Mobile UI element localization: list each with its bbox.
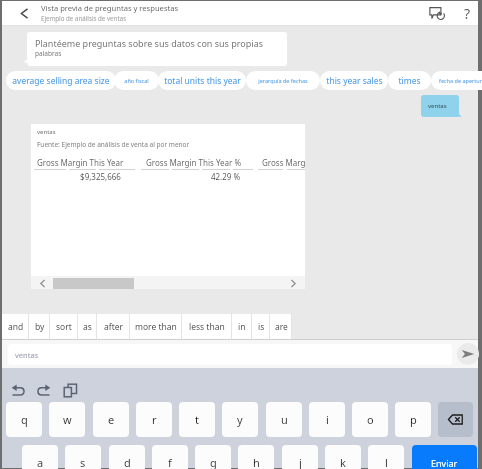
button[interactable]: s: [65, 445, 101, 469]
button[interactable]: g: [195, 445, 231, 469]
button[interactable]: i: [309, 402, 345, 437]
staticText: Gross Margin This Year %: [146, 157, 242, 168]
button[interactable]: Redo: [32, 379, 54, 401]
staticText: Gross Margin This Year: [37, 157, 124, 168]
button[interactable]: w: [49, 402, 85, 437]
staticText: d: [124, 455, 131, 469]
staticText: w: [63, 412, 72, 427]
button[interactable]: Reset conversation: [425, 1, 450, 26]
staticText: are: [275, 321, 288, 333]
staticText: o: [367, 412, 374, 427]
button[interactable]: o: [352, 402, 388, 437]
staticText: sort: [56, 321, 72, 333]
button[interactable]: Undo: [7, 379, 29, 401]
button[interactable]: k: [325, 445, 361, 469]
staticText: i: [326, 412, 329, 427]
staticText: less than: [189, 321, 225, 333]
button[interactable]: ventas: [8, 344, 452, 365]
staticText: a: [37, 455, 44, 469]
button[interactable]: total units this year: [158, 71, 246, 90]
button[interactable]: q: [6, 402, 42, 437]
button[interactable]: Copy: [59, 379, 81, 401]
button[interactable]: times: [388, 71, 431, 90]
button[interactable]: Send: [457, 343, 479, 365]
staticText: Plantéeme preguntas sobre sus datos con …: [35, 37, 263, 49]
staticText: p: [410, 412, 417, 427]
staticText: e: [108, 412, 115, 427]
button[interactable]: jerarquía de fechas: [246, 71, 320, 90]
staticText: s: [80, 455, 86, 469]
button[interactable]: after: [97, 314, 130, 340]
staticText: g: [210, 455, 217, 469]
staticText: by: [35, 321, 45, 333]
staticText: palabras: [35, 49, 62, 58]
button[interactable]: are: [270, 314, 292, 340]
button[interactable]: e: [93, 402, 129, 437]
button[interactable]: h: [238, 445, 274, 469]
button[interactable]: f: [152, 445, 188, 469]
button[interactable]: y: [222, 402, 258, 437]
staticText: as: [83, 321, 92, 333]
staticText: t: [195, 412, 199, 427]
button[interactable]: more than: [130, 314, 182, 340]
button[interactable]: this year sales: [320, 71, 388, 90]
staticText: ?: [464, 4, 471, 23]
staticText: Vista previa de preguntas y respuestas: [41, 3, 179, 13]
staticText: l: [385, 455, 388, 469]
button[interactable]: by: [29, 314, 50, 340]
button[interactable]: fecha de apertura: [431, 71, 482, 90]
button[interactable]: Backspace: [438, 402, 473, 437]
staticText: Fuente: Ejemplo de análisis de venta al …: [37, 140, 190, 149]
staticText: k: [340, 455, 346, 469]
staticText: total units this year: [164, 75, 241, 87]
staticText: h: [253, 455, 260, 469]
button[interactable]: t: [179, 402, 215, 437]
button[interactable]: is: [252, 314, 270, 340]
staticText: ventas: [37, 128, 56, 136]
button[interactable]: in: [232, 314, 252, 340]
staticText: 42.29 %: [169, 171, 282, 182]
staticText: f: [168, 455, 172, 469]
button[interactable]: as: [78, 314, 97, 340]
staticText: more than: [135, 321, 177, 333]
button[interactable]: Help: [455, 1, 480, 26]
staticText: año fiscal: [124, 77, 149, 84]
staticText: fecha de apertura: [439, 77, 482, 84]
button[interactable]: Enviar: [412, 445, 477, 469]
staticText: after: [104, 321, 124, 333]
staticText: is: [258, 321, 265, 333]
staticText: Ejemplo de análisis de ventas: [41, 14, 127, 22]
staticText: in: [238, 321, 246, 333]
staticText: u: [281, 412, 288, 427]
staticText: jerarquía de fechas: [258, 77, 308, 84]
staticText: times: [398, 75, 421, 87]
button[interactable]: sort: [50, 314, 78, 340]
button[interactable]: d: [109, 445, 145, 469]
staticText: ventas: [428, 102, 447, 110]
staticText: average selling area size: [12, 75, 110, 87]
staticText: Enviar: [431, 457, 458, 469]
staticText: y: [237, 412, 243, 427]
button[interactable]: p: [395, 402, 431, 437]
button[interactable]: and: [2, 314, 29, 340]
button[interactable]: a: [22, 445, 58, 469]
staticText: this year sales: [326, 75, 383, 87]
staticText: Gross Marg: [262, 157, 306, 168]
button[interactable]: l: [368, 445, 404, 469]
button[interactable]: j: [282, 445, 318, 469]
button[interactable]: Back: [12, 1, 37, 26]
button[interactable]: u: [266, 402, 302, 437]
button[interactable]: r: [136, 402, 172, 437]
staticText: $9,325,666: [33, 171, 168, 182]
staticText: and: [8, 321, 24, 333]
button[interactable]: año fiscal: [114, 71, 159, 90]
button[interactable]: less than: [182, 314, 232, 340]
staticText: ventas: [15, 350, 39, 360]
staticText: j: [299, 455, 302, 469]
button[interactable]: average selling area size: [6, 71, 116, 90]
staticText: r: [152, 412, 157, 427]
staticText: q: [21, 412, 28, 427]
